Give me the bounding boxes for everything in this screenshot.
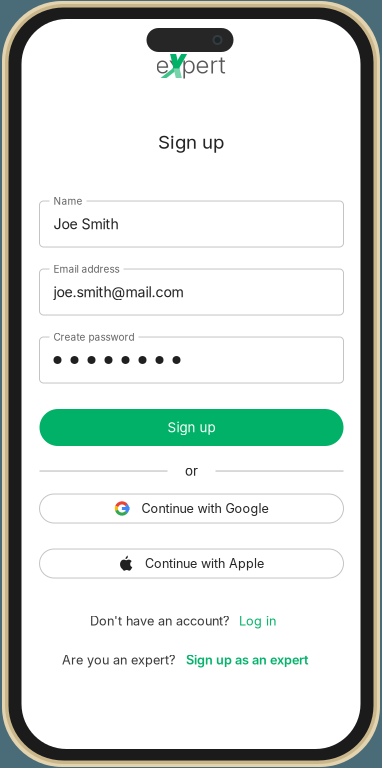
staticText: Sign up as an expert bbox=[186, 652, 308, 668]
staticText: Create password bbox=[53, 331, 134, 343]
staticText: Are you an expert? bbox=[62, 652, 175, 668]
staticText: Sign up bbox=[158, 131, 224, 153]
staticText: Name bbox=[53, 195, 82, 207]
staticText: Continue with Google bbox=[141, 501, 268, 516]
staticText: expert bbox=[155, 50, 225, 79]
staticText: Sign up bbox=[167, 419, 215, 435]
button[interactable]: Continue with Google bbox=[39, 494, 343, 523]
staticText: or bbox=[185, 463, 198, 479]
button[interactable]: Continue with Apple bbox=[39, 549, 343, 578]
button[interactable]: Sign up as an expert bbox=[186, 652, 308, 668]
button[interactable]: Sign up bbox=[39, 409, 343, 446]
button[interactable]: Log in bbox=[239, 613, 276, 629]
staticText: Joe Smith bbox=[53, 215, 118, 232]
staticText: Don't have an account? bbox=[90, 613, 229, 629]
staticText: joe.smith@mail.com bbox=[53, 283, 183, 300]
staticText: Email address bbox=[53, 263, 119, 275]
staticText: Continue with Apple bbox=[145, 556, 264, 571]
staticText: Log in bbox=[239, 613, 276, 629]
